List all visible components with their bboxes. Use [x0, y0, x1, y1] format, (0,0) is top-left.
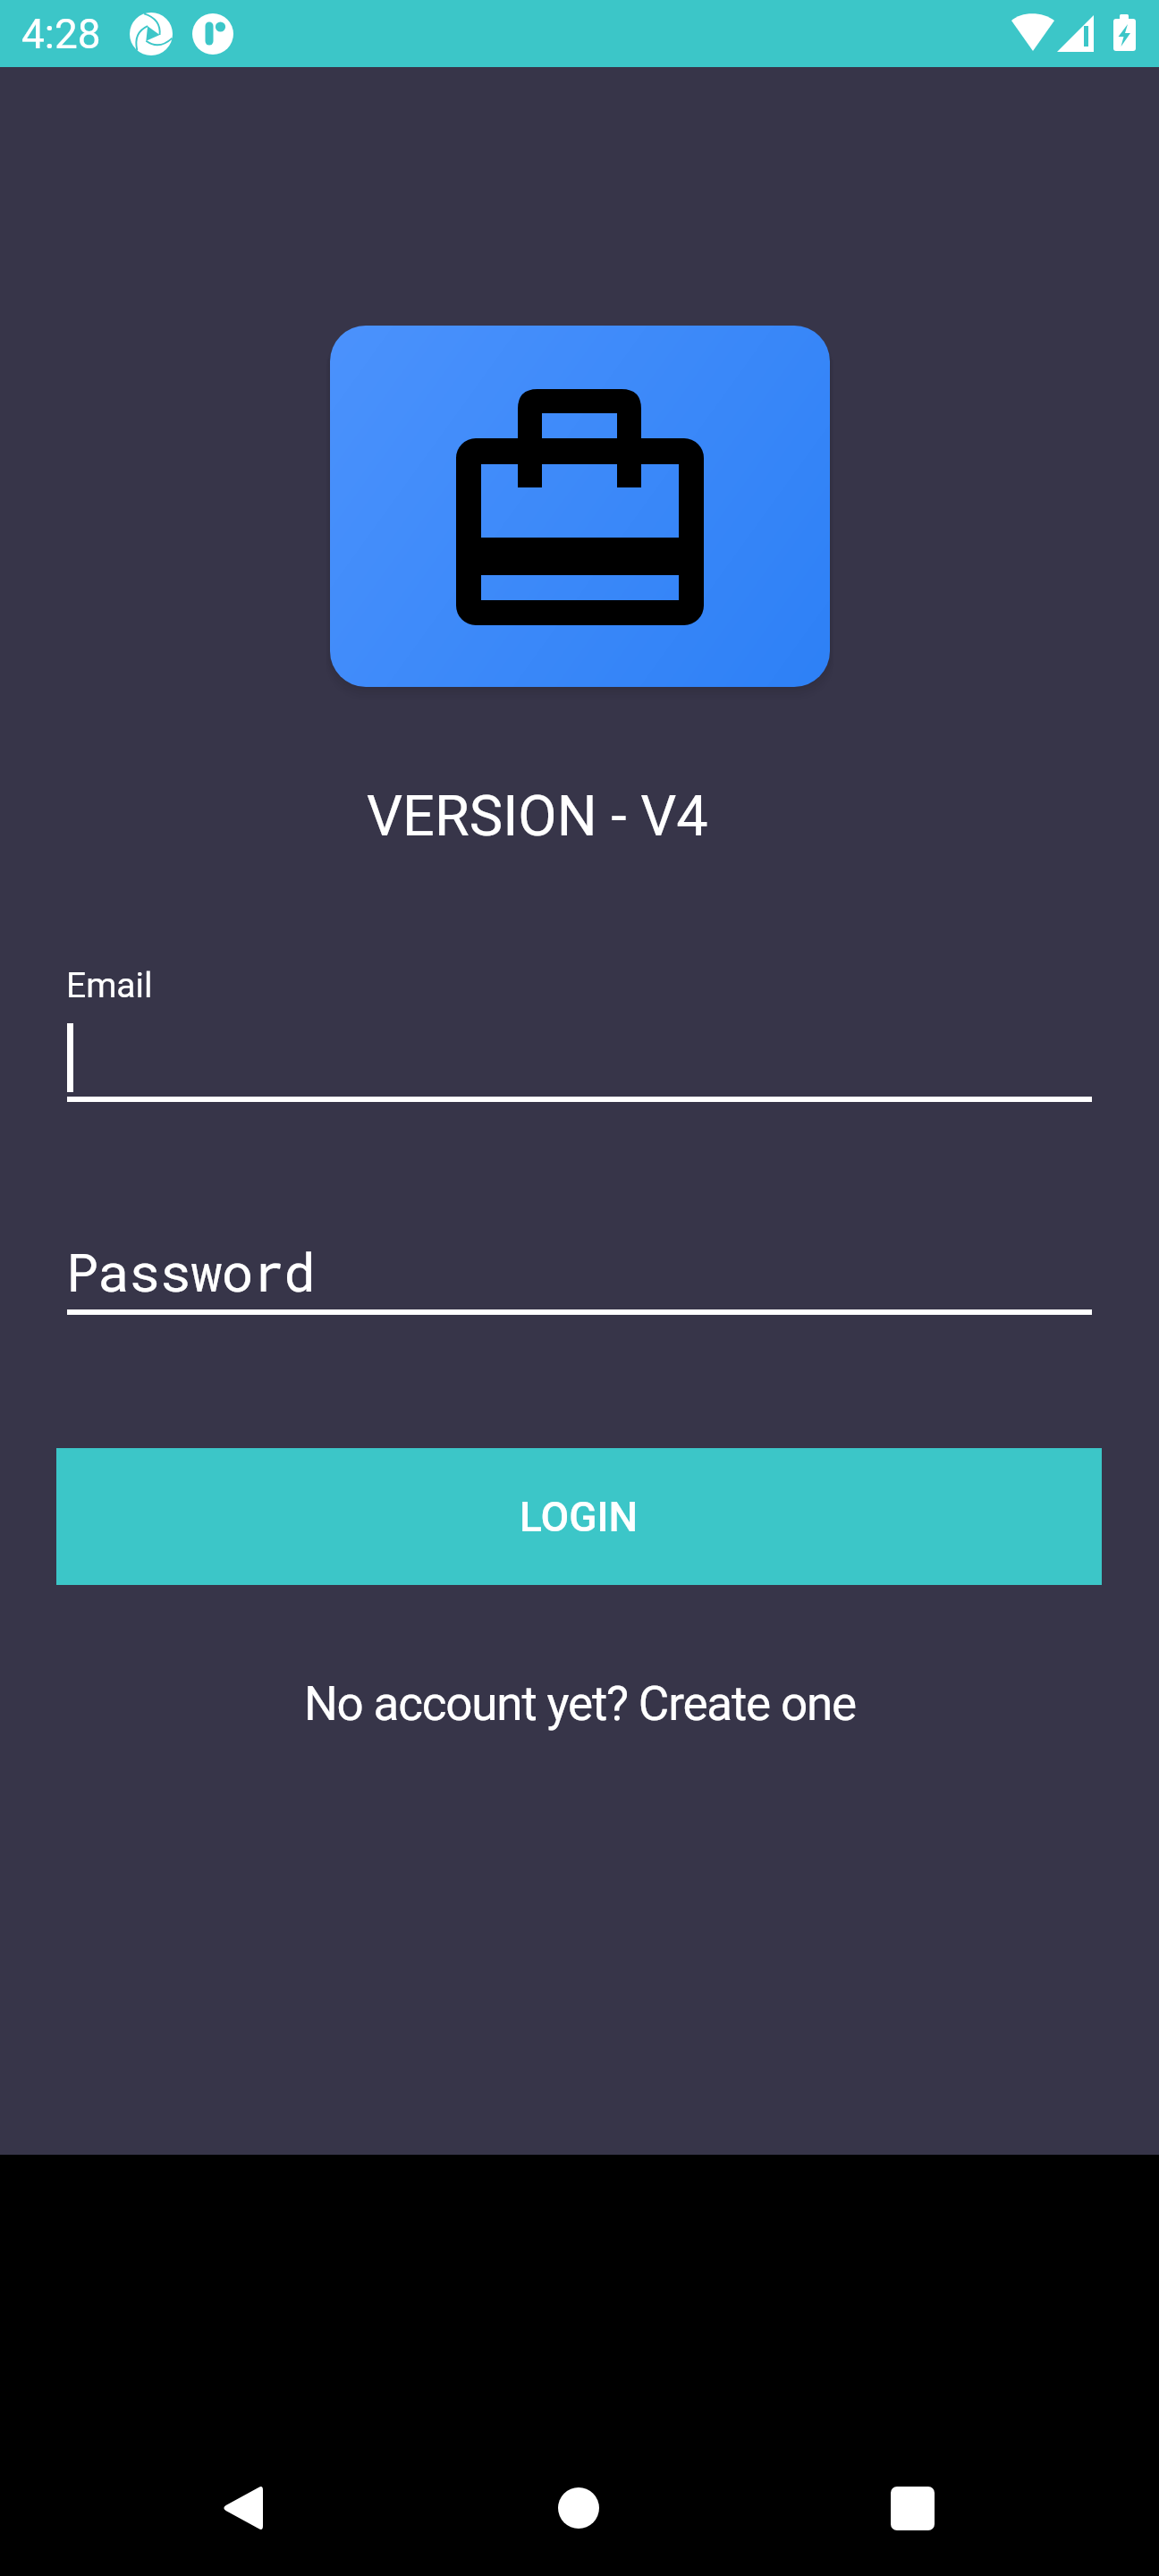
button[interactable]: LOGIN: [56, 1448, 1102, 1585]
button[interactable]: Back: [175, 2441, 309, 2575]
staticText: VERSION - V4: [367, 784, 708, 850]
button[interactable]: Recent apps: [845, 2441, 979, 2575]
staticText: 4:28: [21, 10, 101, 58]
button[interactable]: Password: [67, 1230, 1092, 1315]
button[interactable]: No account yet? Create one: [288, 1669, 872, 1739]
staticText: Password: [66, 1235, 315, 1306]
button[interactable]: Home: [512, 2441, 646, 2575]
staticText: No account yet? Create one: [304, 1676, 856, 1732]
staticText: Email: [66, 965, 153, 1006]
button[interactable]: Email: [67, 957, 1092, 1102]
staticText: LOGIN: [520, 1493, 639, 1541]
